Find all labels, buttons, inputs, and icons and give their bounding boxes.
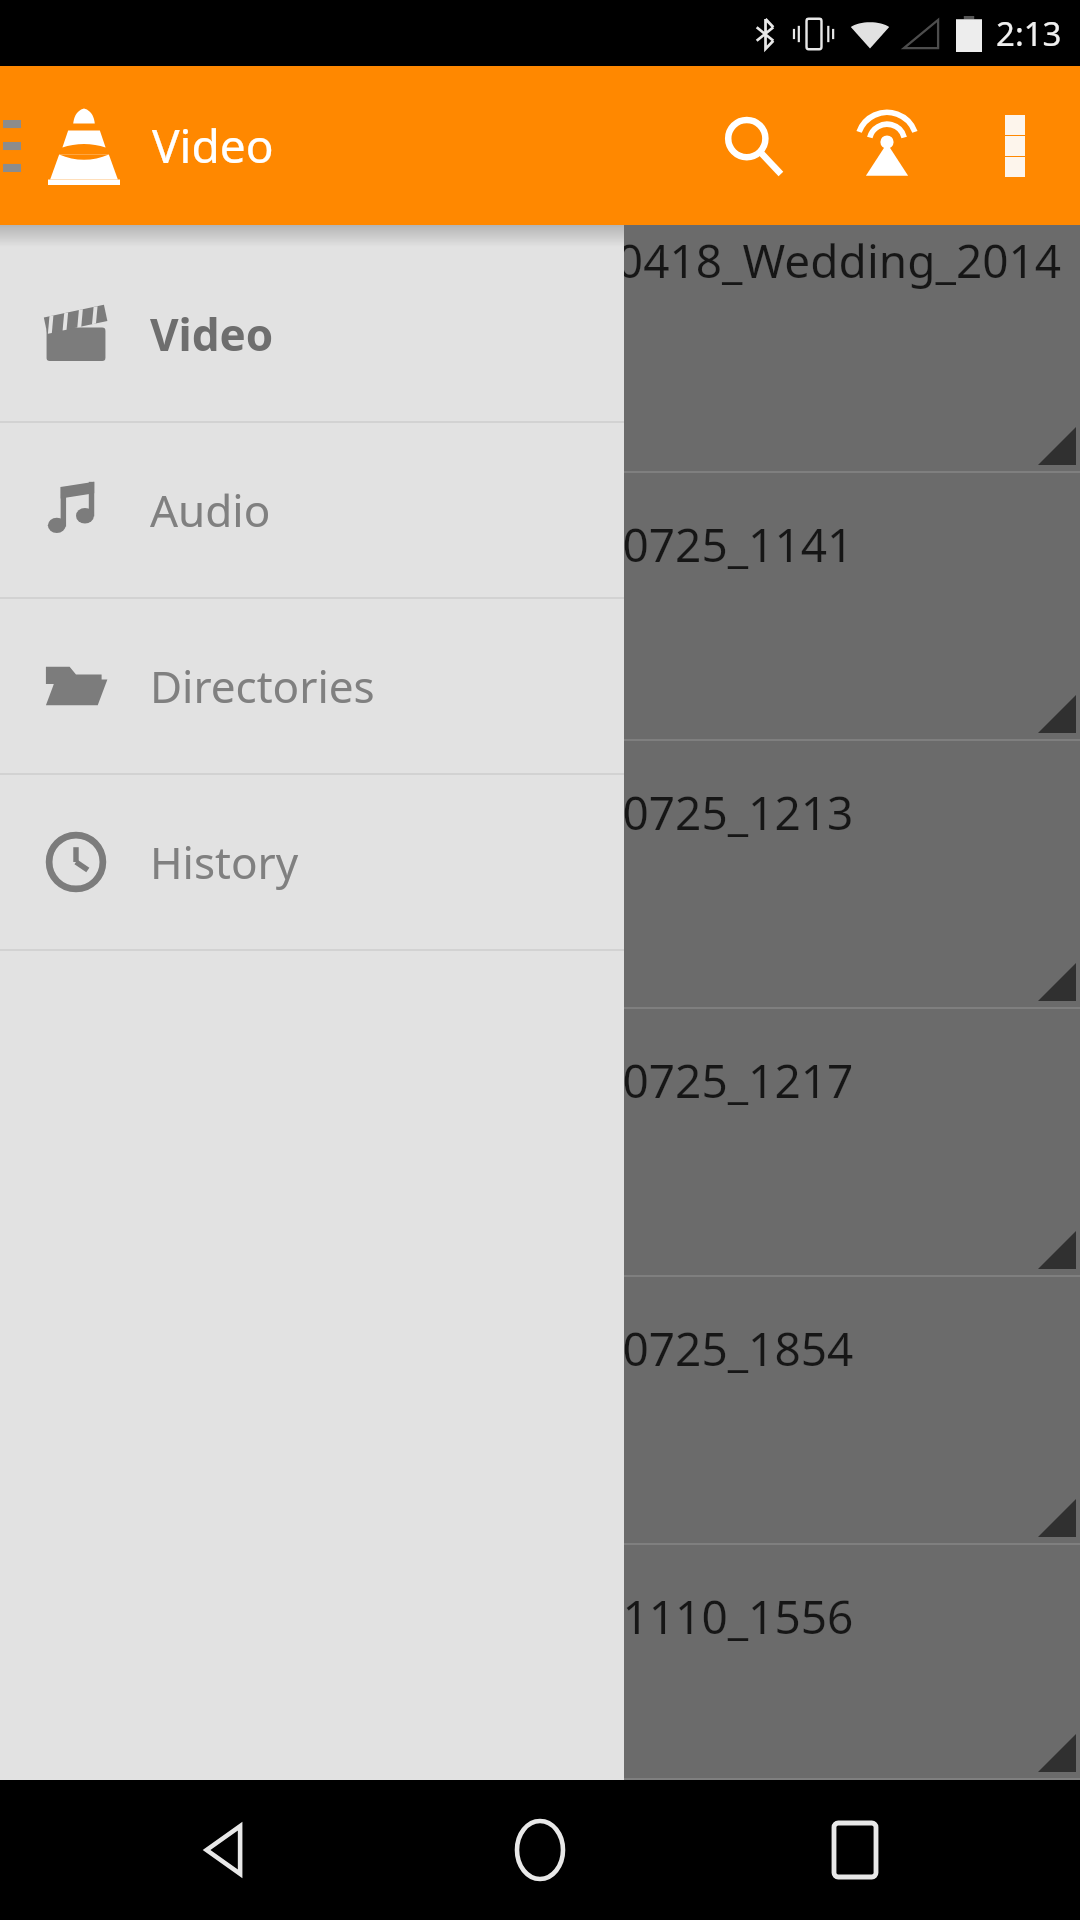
staticText: 2:13	[996, 11, 1062, 56]
button[interactable]: VID_20141110_1556	[0, 1545, 1080, 1780]
staticText: VID_20141110_1556	[420, 1585, 854, 1648]
button[interactable]: Back	[135, 1780, 315, 1920]
button[interactable]: VID_20140725_1217	[0, 1009, 1080, 1277]
staticText: VID-20140418_Wedding_2014041…	[420, 229, 1080, 354]
button[interactable]: VID_20140725_1213	[0, 741, 1080, 1009]
button[interactable]: Home	[450, 1780, 630, 1920]
staticText: VID_20140725_1213	[420, 781, 854, 844]
staticText: Directories	[150, 656, 375, 716]
button[interactable]: Audio	[0, 423, 624, 597]
staticText: History	[150, 832, 299, 892]
button[interactable]: History	[0, 775, 624, 949]
staticText: Video	[150, 304, 274, 364]
button[interactable]: VID-20140418_Wedding_2014041…	[0, 225, 1080, 473]
button[interactable]: Search	[688, 66, 818, 225]
button[interactable]: Open navigation drawer	[0, 66, 24, 225]
button[interactable]: More options	[956, 66, 1074, 225]
staticText: Audio	[150, 480, 271, 540]
staticText: VID_20140725_1141	[420, 513, 854, 576]
staticText: Video	[152, 114, 274, 177]
staticText: VID_20140725_1217	[420, 1049, 854, 1112]
button[interactable]: VID_20140725_1141	[0, 473, 1080, 741]
button[interactable]: VID_20140725_1854	[0, 1277, 1080, 1545]
button[interactable]: Stream	[818, 66, 956, 225]
button[interactable]: Video	[0, 247, 624, 421]
staticText: VID_20140725_1854	[420, 1317, 854, 1380]
button[interactable]: Directories	[0, 599, 624, 773]
button[interactable]: Recent apps	[765, 1780, 945, 1920]
